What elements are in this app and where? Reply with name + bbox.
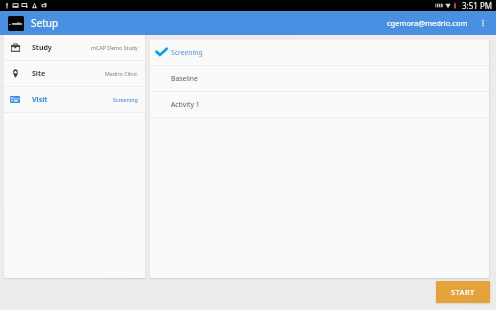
staticText: Setup (31, 16, 59, 30)
staticText: mCAP Demo Study (91, 44, 138, 51)
staticText: START (451, 287, 475, 297)
staticText: Baseline (171, 74, 198, 83)
staticText: Site (32, 69, 46, 79)
staticText: cgemora@medrio.com (387, 18, 468, 28)
button[interactable]: Visit (4, 87, 145, 112)
staticText: Screening (171, 48, 203, 57)
staticText: Study (32, 43, 52, 53)
staticText: Activity 1 (171, 100, 200, 109)
button[interactable]: START (436, 281, 490, 303)
button[interactable]: Medrio home (8, 16, 24, 31)
staticText: medrio (12, 22, 23, 26)
button[interactable]: Screening (150, 40, 489, 65)
staticText: Medrio Clinic (105, 70, 138, 77)
button[interactable]: More options (475, 15, 491, 31)
staticText: Visit (32, 95, 48, 105)
staticText: 3:51 PM (462, 0, 493, 11)
button[interactable]: Baseline (150, 66, 489, 91)
button[interactable]: Activity 1 (150, 92, 489, 117)
staticText: Screening (113, 96, 138, 103)
button[interactable]: Study (4, 35, 145, 60)
button[interactable]: Site (4, 61, 145, 86)
